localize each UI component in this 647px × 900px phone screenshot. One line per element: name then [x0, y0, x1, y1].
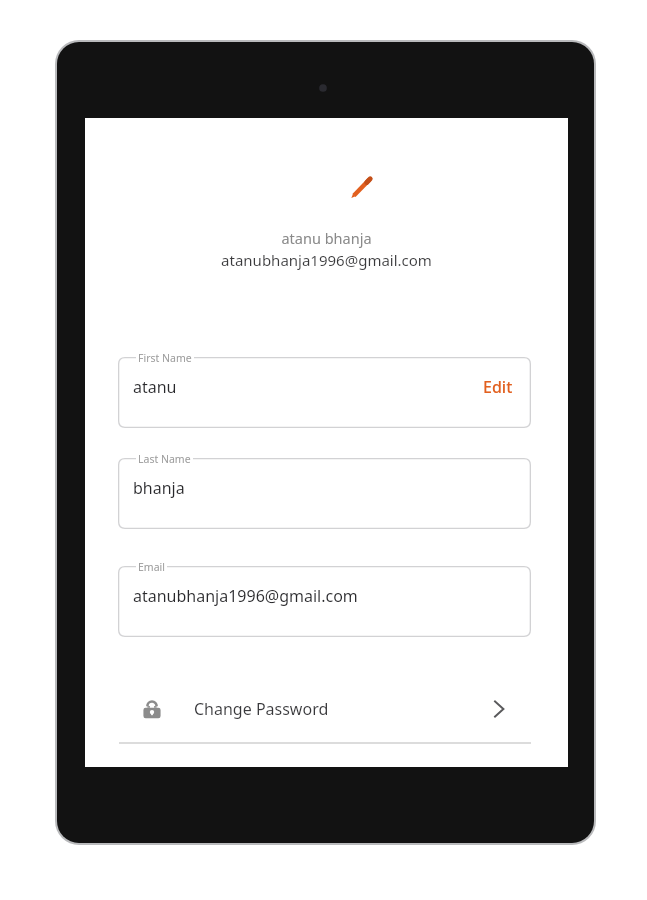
button[interactable]: Edit: [479, 372, 517, 402]
button[interactable]: Last Name: [118, 458, 531, 529]
button[interactable]: Email: [118, 566, 531, 637]
staticText: atanu: [133, 376, 177, 398]
staticText: Last Name: [138, 452, 191, 466]
staticText: First Name: [138, 351, 192, 365]
staticText: Change Password: [194, 698, 329, 720]
staticText: Edit: [483, 376, 513, 398]
staticText: Email: [138, 560, 165, 574]
staticText: bhanja: [133, 477, 185, 499]
staticText: atanubhanja1996@gmail.com: [221, 250, 432, 270]
button[interactable]: Edit profile photo: [341, 168, 381, 208]
button[interactable]: First Name: [118, 357, 531, 428]
button[interactable]: Change Password: [118, 680, 531, 738]
staticText: atanu bhanja: [281, 228, 372, 248]
staticText: atanubhanja1996@gmail.com: [133, 585, 358, 607]
